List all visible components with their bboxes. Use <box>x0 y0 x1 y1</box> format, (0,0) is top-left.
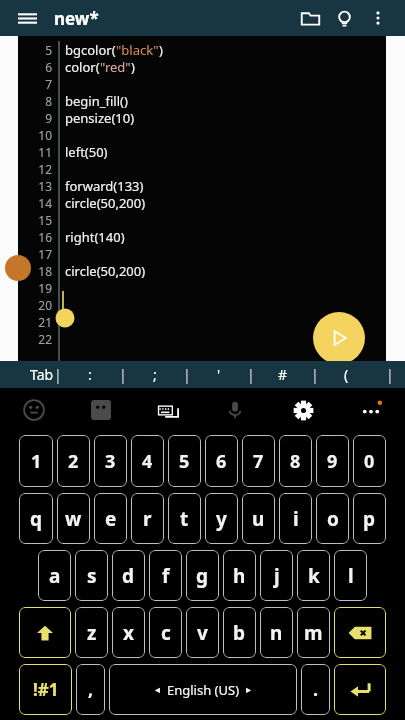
staticText: 5 <box>18 42 52 58</box>
button[interactable]: ' <box>217 365 221 384</box>
staticText: 9 <box>18 110 52 126</box>
button[interactable]: ( <box>344 365 349 384</box>
staticText: ◂ <box>155 684 161 696</box>
button[interactable]: c <box>149 607 182 658</box>
staticText: 17 <box>18 246 52 262</box>
staticText: circle(50,200) <box>65 262 146 279</box>
staticText: h <box>233 563 246 589</box>
button[interactable]: u <box>242 493 275 544</box>
button[interactable] <box>19 607 71 658</box>
staticText: e <box>105 506 117 532</box>
button[interactable]: x <box>112 607 145 658</box>
button[interactable]: v <box>186 607 219 658</box>
button[interactable]: Switch keyboard <box>134 388 201 432</box>
button[interactable]: m <box>297 607 330 658</box>
staticText: 6 <box>18 59 52 75</box>
staticText: bgcolor( <box>65 41 116 58</box>
staticText: 20 <box>18 297 52 313</box>
button[interactable]: Stickers <box>67 388 134 432</box>
button[interactable]: h <box>223 550 256 601</box>
button[interactable]: Hints <box>327 1 361 35</box>
button[interactable]: k <box>297 550 330 601</box>
staticText: q <box>30 506 43 532</box>
staticText: "red" <box>100 58 131 75</box>
staticText: 22 <box>18 331 52 347</box>
staticText: w <box>65 506 82 532</box>
staticText: 8 <box>18 93 52 109</box>
button[interactable]: 8 <box>279 435 312 487</box>
button[interactable]: !#1 <box>19 664 72 715</box>
button[interactable]: w <box>57 493 90 544</box>
button[interactable] <box>334 664 386 715</box>
button[interactable]: More options <box>361 1 395 35</box>
staticText: "black" <box>116 41 159 58</box>
staticText: 12 <box>18 161 52 177</box>
button[interactable]: j <box>260 550 293 601</box>
button[interactable]: 4 <box>131 435 164 487</box>
button[interactable]: More <box>337 388 405 432</box>
button[interactable]: b <box>223 607 256 658</box>
staticText: | <box>247 365 255 384</box>
button[interactable]: Emoji <box>0 388 67 432</box>
staticText: v <box>197 620 208 646</box>
staticText: j <box>274 563 280 589</box>
staticText: 8 <box>290 449 301 474</box>
button[interactable] <box>334 607 386 658</box>
button[interactable]: : <box>88 365 92 384</box>
staticText: 10 <box>18 127 52 143</box>
staticText: d <box>122 563 135 589</box>
button[interactable]: Voice input <box>201 388 269 432</box>
button[interactable]: o <box>316 493 349 544</box>
staticText: 15 <box>18 212 52 228</box>
button[interactable]: i <box>279 493 312 544</box>
button[interactable]: Settings <box>269 388 337 432</box>
staticText: l <box>348 563 354 589</box>
button[interactable]: 1 <box>19 435 53 487</box>
button[interactable]: 6 <box>205 435 238 487</box>
staticText: g <box>196 563 209 589</box>
button[interactable]: , <box>76 664 105 715</box>
button[interactable]: Run <box>313 312 365 364</box>
staticText: English (US) <box>167 681 240 699</box>
staticText: k <box>308 563 320 589</box>
staticText: new* <box>54 7 99 30</box>
button[interactable]: n <box>260 607 293 658</box>
button[interactable]: 3 <box>94 435 127 487</box>
button[interactable]: 5 <box>168 435 201 487</box>
button[interactable]: d <box>112 550 145 601</box>
button[interactable]: . <box>301 664 330 715</box>
button[interactable]: f <box>149 550 182 601</box>
button[interactable]: Tab <box>30 365 54 384</box>
button[interactable]: r <box>131 493 164 544</box>
button[interactable]: t <box>168 493 201 544</box>
button[interactable]: l <box>334 550 367 601</box>
staticText: !#1 <box>33 678 59 701</box>
button[interactable]: s <box>75 550 108 601</box>
button[interactable]: p <box>353 493 386 544</box>
staticText: 0 <box>364 449 375 474</box>
staticText: left(50) <box>65 143 108 160</box>
staticText: z <box>87 620 97 646</box>
staticText: ) <box>159 41 163 58</box>
staticText: 16 <box>18 229 52 245</box>
button[interactable]: e <box>94 493 127 544</box>
button[interactable]: 0 <box>353 435 386 487</box>
button[interactable]: Menu <box>10 1 44 35</box>
button[interactable]: a <box>38 550 71 601</box>
staticText: o <box>327 506 339 532</box>
button[interactable]: y <box>205 493 238 544</box>
button[interactable]: ; <box>153 365 157 384</box>
staticText: | <box>183 365 191 384</box>
button[interactable]: Open file <box>293 1 327 35</box>
button[interactable]: g <box>186 550 219 601</box>
button[interactable]: q <box>19 493 53 544</box>
button[interactable]: # <box>278 365 288 384</box>
button[interactable]: ◂ <box>109 664 297 715</box>
button[interactable]: 2 <box>57 435 90 487</box>
staticText: | <box>311 365 319 384</box>
button[interactable]: 9 <box>316 435 349 487</box>
staticText: r <box>143 506 152 532</box>
button[interactable]: 7 <box>242 435 275 487</box>
staticText: 9 <box>327 449 338 474</box>
button[interactable]: z <box>75 607 108 658</box>
